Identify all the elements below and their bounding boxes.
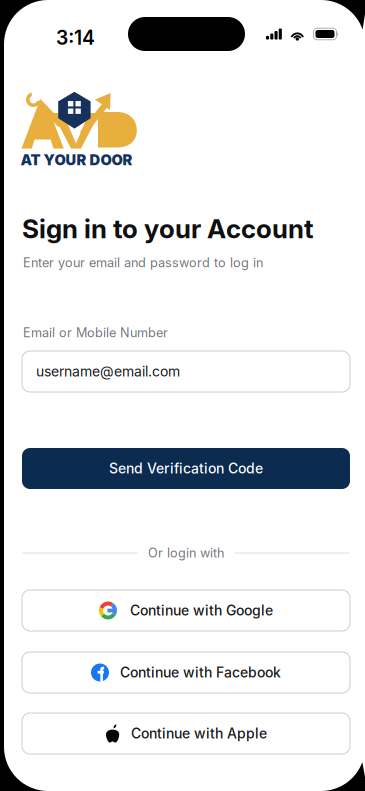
staticText: Continue with Google — [130, 602, 273, 619]
button[interactable]: Continue with Google — [22, 590, 350, 631]
button[interactable]: Continue with Facebook — [22, 652, 350, 693]
button[interactable]: Send Verification Code — [22, 448, 350, 489]
staticText: username@email.com — [36, 363, 180, 380]
staticText: Send Verification Code — [109, 460, 263, 477]
staticText: Continue with Facebook — [120, 664, 281, 681]
button[interactable]: Continue with Apple — [22, 713, 350, 754]
staticText: Or login with — [148, 545, 224, 561]
staticText: Continue with Apple — [131, 725, 267, 742]
staticText: Enter your email and password to log in — [23, 255, 263, 270]
staticText: 3:14 — [56, 26, 95, 49]
staticText: AT YOUR DOOR — [20, 151, 132, 169]
staticText: Email or Mobile Number — [23, 325, 168, 340]
staticText: Sign in to your Account — [22, 213, 314, 244]
